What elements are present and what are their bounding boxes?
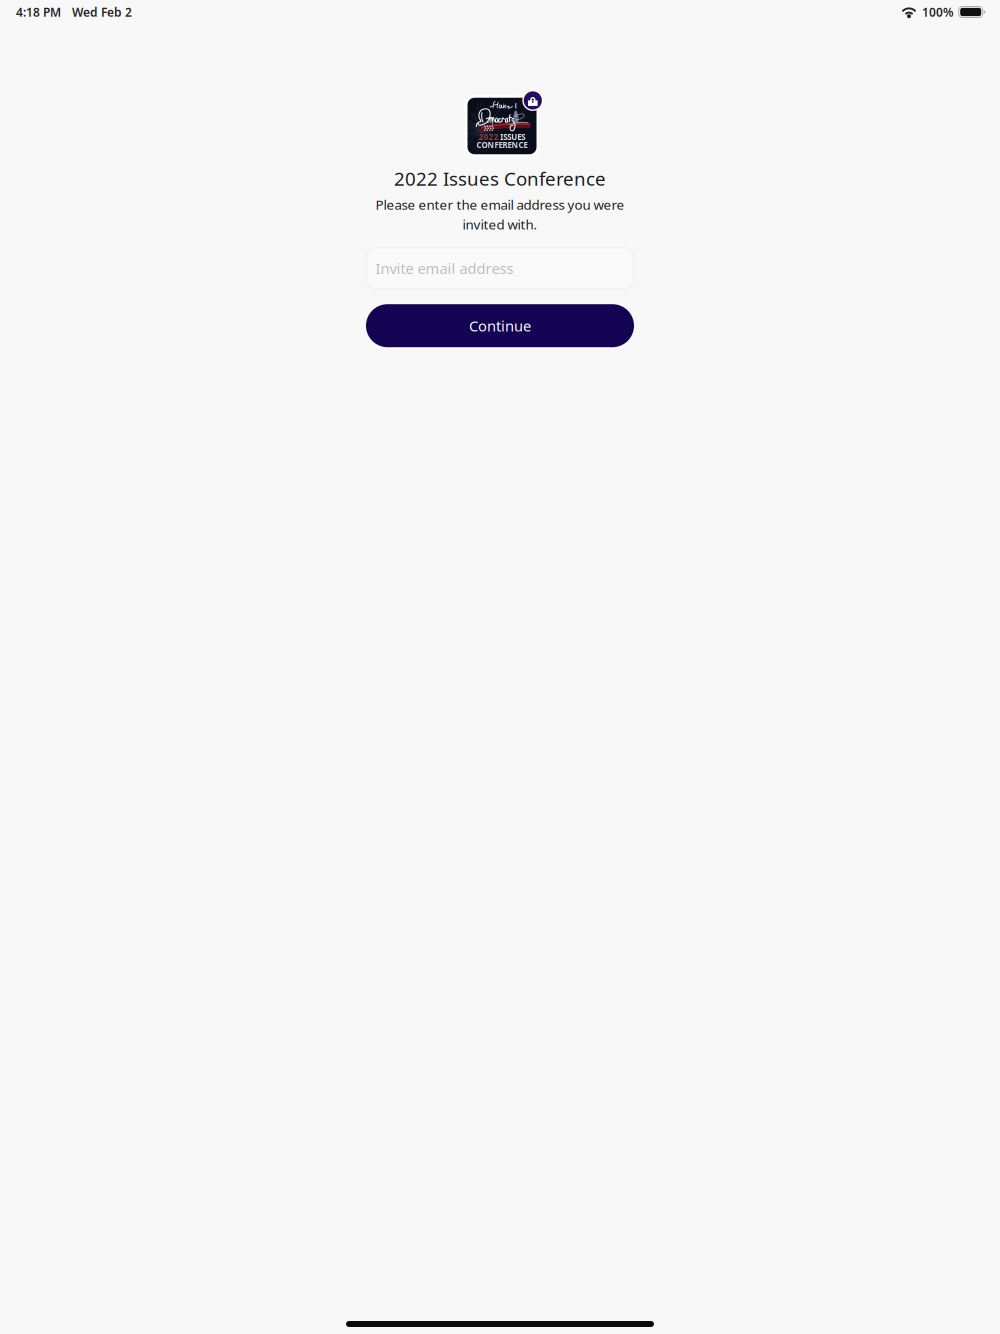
staticText: Continue <box>469 316 531 335</box>
button[interactable]: Invite email address <box>366 247 634 289</box>
staticText: Please enter the email address you were <box>375 196 624 213</box>
staticText: CONFERENCE <box>476 140 527 150</box>
staticText: Invite email address <box>375 258 513 278</box>
staticText: 2022 Issues Conference <box>394 166 606 191</box>
button[interactable]: Continue <box>366 304 634 347</box>
staticText: 2022 <box>479 131 499 142</box>
staticText: 100% <box>922 4 954 20</box>
staticText: invited with. <box>462 215 537 233</box>
staticText: Wed Feb 2 <box>72 4 132 20</box>
staticText: 4:18 PM <box>16 4 61 20</box>
staticText: ISSUES <box>500 131 525 142</box>
